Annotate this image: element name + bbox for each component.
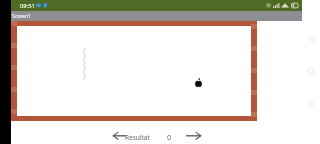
button[interactable]: Home [304,64,318,78]
staticText: 09:51 [20,2,35,10]
staticText: Screen1 [12,13,31,20]
button[interactable]: Drawing canvas [11,21,257,121]
button[interactable]: Next result [186,131,202,141]
button[interactable]: Recent apps [304,97,318,111]
staticText: 0 [167,133,172,143]
button[interactable]: Back [304,32,318,46]
button[interactable]: Previous result [112,131,126,141]
staticText: Resultat [125,133,150,142]
